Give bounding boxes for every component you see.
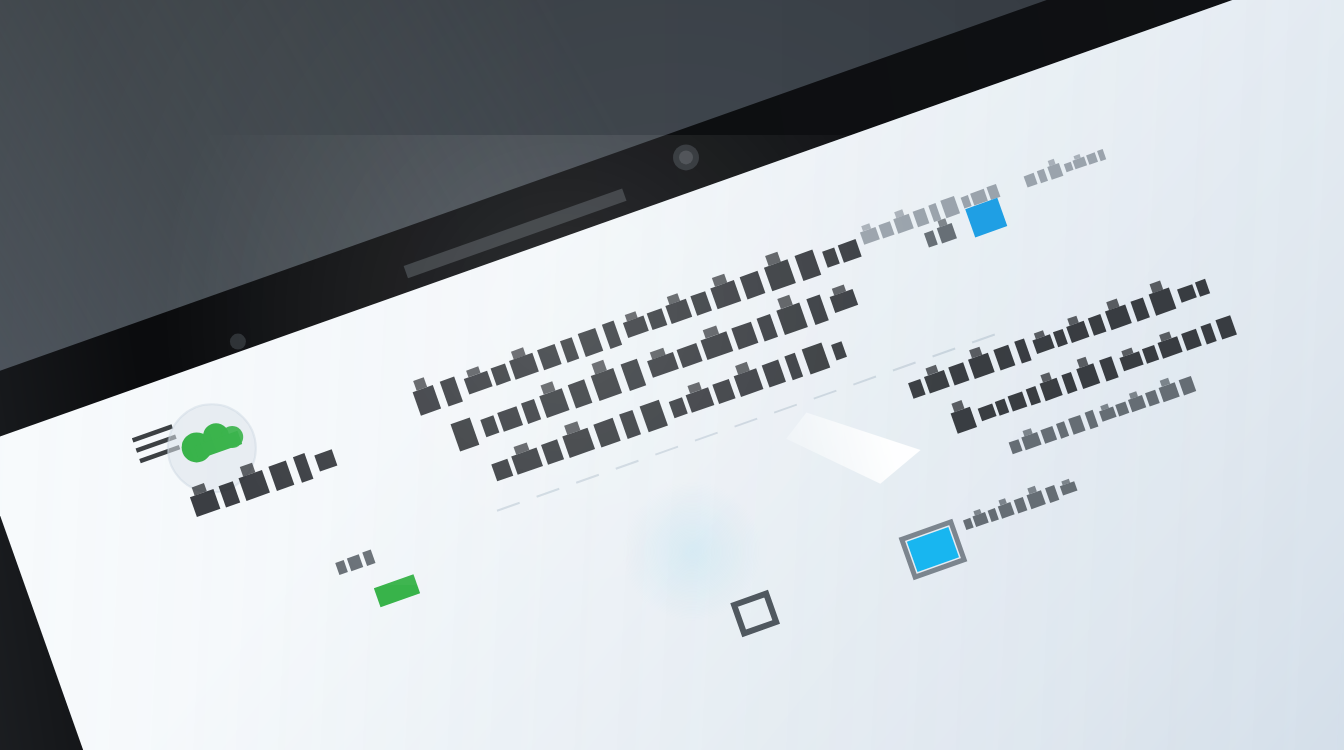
- button[interactable]: Phone screen photo: [0, 0, 1344, 750]
